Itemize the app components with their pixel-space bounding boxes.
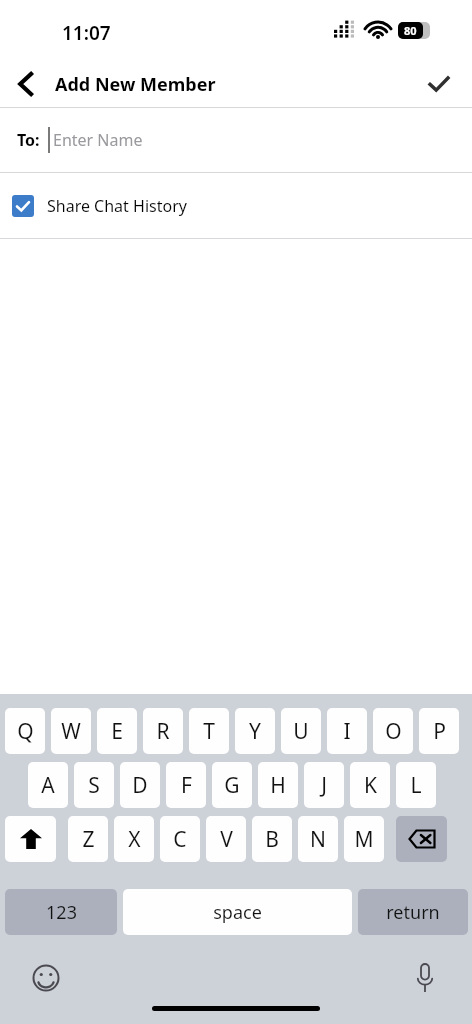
button[interactable]: U: [281, 708, 321, 754]
button[interactable]: Emoji: [26, 958, 66, 998]
button[interactable]: To:: [0, 108, 472, 172]
button[interactable]: Backspace: [396, 816, 447, 862]
button[interactable]: X: [114, 816, 154, 862]
button[interactable]: A: [28, 762, 68, 808]
staticText: L: [410, 771, 422, 800]
staticText: space: [213, 900, 262, 925]
staticText: Q: [17, 717, 34, 746]
staticText: H: [270, 771, 286, 800]
staticText: W: [61, 717, 81, 746]
staticText: B: [265, 825, 279, 854]
staticText: V: [220, 825, 233, 854]
button[interactable]: M: [344, 816, 384, 862]
button[interactable]: S: [74, 762, 114, 808]
button[interactable]: Q: [5, 708, 45, 754]
button[interactable]: E: [97, 708, 137, 754]
button[interactable]: space: [123, 889, 352, 935]
staticText: A: [41, 771, 55, 800]
button[interactable]: W: [51, 708, 91, 754]
staticText: I: [343, 717, 351, 746]
button[interactable]: return: [358, 889, 468, 935]
button[interactable]: 123: [5, 889, 117, 935]
button[interactable]: H: [258, 762, 298, 808]
staticText: N: [310, 825, 326, 854]
button[interactable]: L: [396, 762, 436, 808]
button[interactable]: O: [373, 708, 413, 754]
button[interactable]: G: [212, 762, 252, 808]
button[interactable]: Dictation: [405, 958, 445, 998]
staticText: 11:07: [62, 20, 111, 46]
button[interactable]: D: [120, 762, 160, 808]
button[interactable]: N: [298, 816, 338, 862]
button[interactable]: R: [143, 708, 183, 754]
button[interactable]: C: [160, 816, 200, 862]
staticText: Add New Member: [55, 72, 216, 97]
button[interactable]: Shift: [5, 816, 56, 862]
staticText: S: [88, 771, 100, 800]
staticText: D: [132, 771, 148, 800]
staticText: K: [364, 771, 377, 800]
staticText: R: [156, 717, 170, 746]
button[interactable]: K: [350, 762, 390, 808]
staticText: T: [203, 717, 215, 746]
staticText: P: [433, 717, 446, 746]
staticText: Y: [249, 717, 261, 746]
staticText: X: [128, 825, 141, 854]
button[interactable]: F: [166, 762, 206, 808]
staticText: 123: [46, 900, 77, 925]
staticText: M: [354, 825, 374, 854]
button[interactable]: Back: [4, 60, 48, 107]
staticText: G: [224, 771, 240, 800]
staticText: 80: [404, 23, 417, 38]
staticText: Z: [82, 825, 95, 854]
staticText: U: [293, 717, 309, 746]
button[interactable]: Done: [415, 60, 463, 107]
staticText: return: [386, 900, 440, 925]
button[interactable]: V: [206, 816, 246, 862]
staticText: C: [173, 825, 187, 854]
staticText: Enter Name: [53, 129, 143, 151]
button[interactable]: P: [419, 708, 459, 754]
button[interactable]: B: [252, 816, 292, 862]
staticText: To:: [17, 129, 40, 151]
button[interactable]: Y: [235, 708, 275, 754]
button[interactable]: I: [327, 708, 367, 754]
staticText: Share Chat History: [47, 195, 187, 217]
staticText: O: [385, 717, 402, 746]
button[interactable]: Z: [68, 816, 108, 862]
staticText: E: [111, 717, 123, 746]
button[interactable]: T: [189, 708, 229, 754]
button[interactable]: J: [304, 762, 344, 808]
button[interactable]: Share Chat History: [0, 173, 472, 238]
staticText: J: [321, 771, 327, 800]
staticText: F: [181, 771, 192, 800]
